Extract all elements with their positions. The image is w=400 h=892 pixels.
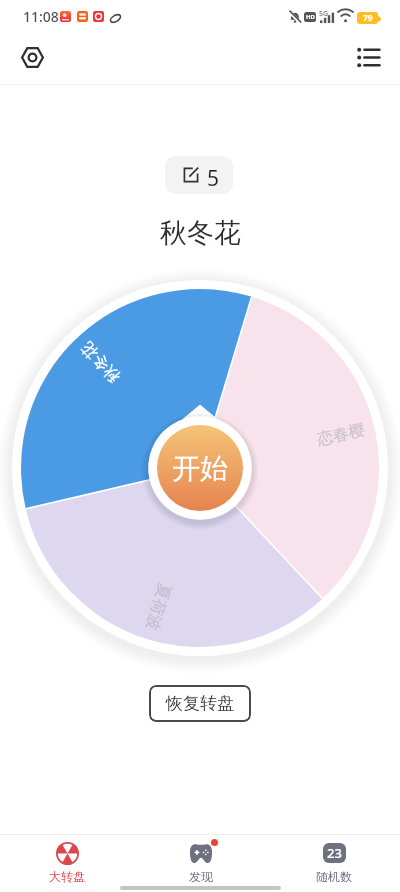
staticText: 79	[363, 12, 373, 24]
button[interactable]: List	[348, 37, 388, 77]
staticText: 恋春樱	[315, 420, 367, 450]
staticText: 秋冬花	[77, 338, 125, 386]
staticText: 5	[207, 164, 220, 193]
staticText: 发现	[189, 869, 213, 884]
staticText: 夏荷波	[141, 581, 174, 633]
staticText: 23	[327, 844, 342, 862]
staticText: 11:08	[23, 7, 59, 26]
staticText: 5G	[319, 9, 329, 19]
staticText: 秋冬花	[160, 216, 241, 250]
staticText: HD	[306, 13, 315, 21]
staticText: 开始	[172, 451, 228, 486]
staticText: 随机数	[316, 869, 352, 884]
staticText: 大转盘	[49, 869, 85, 884]
staticText: 恢复转盘	[166, 693, 234, 714]
button[interactable]: 大转盘	[0, 835, 134, 884]
button[interactable]: 恢复转盘	[149, 685, 251, 722]
button[interactable]: 发现	[134, 835, 267, 884]
button[interactable]: Settings	[12, 37, 52, 77]
button[interactable]: 开始	[157, 425, 243, 511]
button[interactable]: 5	[165, 156, 233, 194]
button[interactable]: 23	[267, 835, 400, 884]
